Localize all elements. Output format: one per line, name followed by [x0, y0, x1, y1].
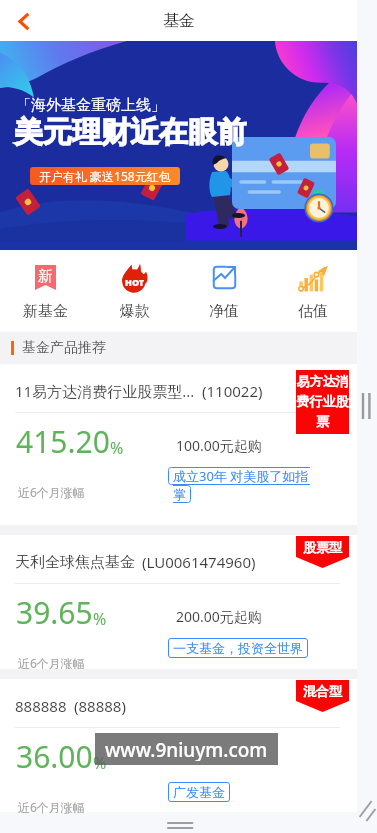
staticText: 开户有礼 豪送158元红包 [39, 168, 171, 184]
staticText: 广发基金 [173, 784, 225, 800]
staticText: 100.00元起购 [176, 436, 262, 455]
staticText: 「海外基金重磅上线」 [16, 96, 166, 115]
staticText: 易方达消费行业股票 [296, 373, 349, 430]
staticText: % [93, 608, 107, 630]
staticText: (88888) [74, 696, 126, 716]
staticText: 掌 [173, 486, 186, 502]
staticText: 36.00 [16, 736, 93, 777]
staticText: (LU0061474960) [142, 552, 256, 572]
staticText: 888888 [15, 696, 67, 716]
staticText: 415.20 [16, 421, 110, 462]
staticText: % [93, 752, 107, 774]
staticText: 新基金 [23, 302, 68, 321]
button[interactable]: 成立30年 对美股了如指 [168, 467, 310, 503]
staticText: 新 [38, 267, 53, 286]
staticText: 爆款 [120, 302, 150, 321]
staticText: 混合型 [296, 683, 349, 699]
button[interactable]: HOT [90, 250, 179, 321]
staticText: 近6个月涨幅 [18, 484, 85, 500]
button[interactable]: 新 [0, 250, 90, 321]
staticText: 基金产品推荐 [22, 339, 106, 357]
staticText: 近6个月涨幅 [18, 655, 85, 671]
button[interactable]: 净值 [179, 250, 268, 321]
staticText: 一支基金，投资全世界 [173, 640, 303, 656]
button[interactable]: 开户有礼 豪送158元红包 [39, 167, 171, 185]
staticText: 股票型 [296, 539, 349, 555]
button[interactable]: 估值 [268, 250, 357, 321]
button[interactable]: 一支基金，投资全世界 [173, 640, 303, 656]
button[interactable]: Back [8, 6, 38, 36]
button[interactable]: 广发基金 [173, 784, 225, 800]
staticText: 净值 [209, 302, 239, 321]
button[interactable]: 11易方达消费行业股票型... [0, 364, 357, 525]
staticText: 天利全球焦点基金 [15, 553, 135, 572]
staticText: HOT [125, 276, 145, 288]
staticText: 200.00元起购 [176, 607, 262, 626]
staticText: % [110, 437, 124, 459]
button[interactable]: 888888 [0, 679, 357, 812]
staticText: 39.65 [16, 592, 93, 633]
staticText: www.9niuym.com [105, 737, 268, 761]
button[interactable]: 天利全球焦点基金 [0, 535, 357, 669]
staticText: (110022) [202, 381, 263, 401]
staticText: 11易方达消费行业股票型... [15, 381, 195, 401]
staticText: 近6个月涨幅 [18, 799, 85, 815]
staticText: 估值 [298, 302, 328, 321]
staticText: 美元理财近在眼前 [14, 114, 246, 151]
staticText: 基金 [163, 11, 195, 31]
staticText: 成立30年 对美股了如指 [173, 467, 309, 485]
